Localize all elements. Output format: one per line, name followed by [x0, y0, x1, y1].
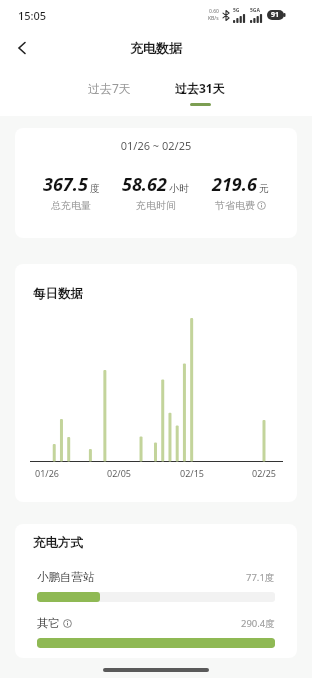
staticText: 01/26 ~ 02/25: [15, 138, 297, 153]
staticText: 290.4度: [241, 617, 275, 630]
button[interactable]: 小鹏自营站: [37, 570, 275, 602]
staticText: 小时: [169, 182, 189, 195]
staticText: 充电方式: [33, 535, 83, 551]
staticText: 度: [90, 182, 100, 195]
staticText: 节省电费: [215, 199, 255, 212]
staticText: 每日数据: [33, 286, 83, 302]
staticText: 02/05: [99, 467, 139, 479]
staticText: 5GA: [250, 7, 260, 14]
staticText: 15:05: [18, 8, 47, 23]
staticText: 91: [271, 10, 280, 20]
staticText: 过去31天: [175, 80, 225, 96]
staticText: 总充电量: [51, 199, 91, 212]
staticText: 58.62: [122, 172, 167, 197]
staticText: 元: [259, 182, 269, 195]
button[interactable]: 过去7天: [88, 80, 131, 96]
staticText: 过去7天: [88, 80, 131, 96]
button[interactable]: 过去31天: [175, 80, 225, 106]
staticText: 367.5: [43, 172, 88, 197]
staticText: 0.60: [209, 8, 219, 15]
staticText: 219.6: [212, 172, 257, 197]
staticText: 77.1度: [246, 571, 275, 584]
staticText: 充电时间: [136, 199, 176, 212]
staticText: 02/15: [172, 467, 212, 479]
staticText: KB/s: [208, 15, 219, 22]
staticText: 小鹏自营站: [37, 570, 95, 584]
staticText: 充电数据: [130, 40, 182, 56]
staticText: 01/26: [27, 467, 67, 479]
button[interactable]: 其它: [37, 616, 275, 648]
button[interactable]: [8, 34, 36, 62]
staticText: 5G: [233, 7, 240, 14]
staticText: 02/25: [244, 467, 284, 479]
staticText: 其它: [37, 616, 60, 630]
